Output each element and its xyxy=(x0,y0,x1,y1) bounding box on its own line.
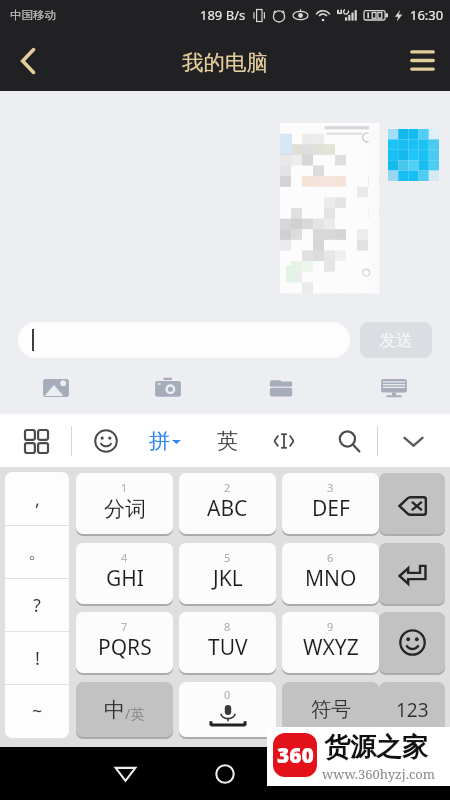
button[interactable]: 。 xyxy=(5,526,69,579)
staticText: 拼 xyxy=(149,428,170,454)
button[interactable]: 2 xyxy=(179,473,276,534)
button[interactable]: 符号 xyxy=(282,682,379,737)
staticText: 6 xyxy=(327,550,334,565)
button[interactable]: 中 xyxy=(76,682,173,737)
staticText: 9 xyxy=(327,619,334,634)
staticText: TUV xyxy=(208,633,248,662)
staticText: MNO xyxy=(305,564,357,593)
button[interactable]: Hide keyboard xyxy=(391,418,435,464)
staticText: 360 xyxy=(277,741,314,770)
staticText: 1 xyxy=(121,480,128,495)
button[interactable]: Search xyxy=(331,423,367,459)
staticText: 中国移动 xyxy=(10,8,56,22)
staticText: 。 xyxy=(28,541,46,564)
staticText: 我的电脑 xyxy=(182,49,268,76)
button[interactable]: 123 xyxy=(379,682,445,737)
button[interactable]: 1 xyxy=(76,473,173,534)
button[interactable]: Image xyxy=(0,362,112,414)
button[interactable] xyxy=(18,322,350,358)
button[interactable]: , xyxy=(5,472,69,526)
staticText: 0 xyxy=(224,687,231,702)
staticText: ABC xyxy=(207,494,248,523)
staticText: 发送 xyxy=(379,330,413,351)
button[interactable]: 8 xyxy=(179,612,276,673)
staticText: /英 xyxy=(125,704,145,723)
staticText: 3 xyxy=(327,480,334,495)
button[interactable]: Home xyxy=(195,747,255,800)
button[interactable]: Keyboard layouts xyxy=(18,423,54,459)
staticText: 中 xyxy=(104,697,125,723)
button[interactable]: Voice input xyxy=(179,682,276,737)
staticText: PQRS xyxy=(98,633,152,662)
button[interactable]: 发送 xyxy=(360,322,432,358)
staticText: 189 B/s xyxy=(200,6,246,24)
staticText: DEF xyxy=(312,494,350,523)
button[interactable]: Emoji xyxy=(88,423,124,459)
button[interactable]: 4 xyxy=(76,543,173,604)
button[interactable]: 拼 xyxy=(149,428,181,454)
button[interactable]: Back xyxy=(0,30,56,91)
staticText: 货源之家 xyxy=(324,731,428,764)
button[interactable]: 7 xyxy=(76,612,173,673)
button[interactable]: 6 xyxy=(282,543,379,604)
button[interactable]: 3 xyxy=(282,473,379,534)
button[interactable]: Menu xyxy=(394,30,450,91)
staticText: 8 xyxy=(224,619,231,634)
button[interactable]: Folder xyxy=(224,362,337,414)
button[interactable]: Screen xyxy=(337,362,450,414)
button[interactable]: Enter xyxy=(379,543,445,604)
staticText: JKL xyxy=(213,564,243,593)
staticText: ? xyxy=(33,593,41,618)
staticText: , xyxy=(35,487,40,512)
staticText: 123 xyxy=(396,697,429,723)
staticText: 符号 xyxy=(311,697,351,722)
staticText: 分词 xyxy=(104,496,146,522)
staticText: 16:30 xyxy=(410,6,444,24)
staticText: www.360hyzj.com xyxy=(322,765,436,783)
button[interactable]: Move cursor xyxy=(266,423,302,459)
staticText: WXYZ xyxy=(303,633,359,662)
button[interactable]: 英 xyxy=(213,423,241,459)
button[interactable]: Emoji xyxy=(379,612,445,673)
staticText: 5 xyxy=(224,550,231,565)
button[interactable]: ! xyxy=(5,632,69,685)
button[interactable]: ? xyxy=(5,579,69,632)
staticText: 2 xyxy=(224,480,231,495)
button[interactable]: Backspace xyxy=(379,473,445,534)
button[interactable]: ~ xyxy=(5,685,69,738)
button[interactable]: Camera xyxy=(112,362,224,414)
staticText: 英 xyxy=(217,428,238,454)
button[interactable]: Back xyxy=(95,747,155,800)
staticText: GHI xyxy=(106,564,144,593)
staticText: ~ xyxy=(32,699,43,724)
button[interactable]: 9 xyxy=(282,612,379,673)
staticText: 4 xyxy=(121,550,128,565)
staticText: ! xyxy=(35,646,40,671)
staticText: 7 xyxy=(121,619,128,634)
button[interactable]: 5 xyxy=(179,543,276,604)
